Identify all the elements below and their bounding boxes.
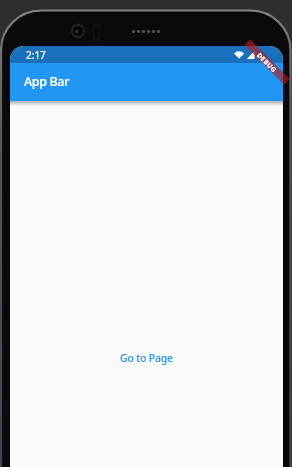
staticText: DEBUG — [256, 51, 279, 74]
button[interactable]: Go to Page — [120, 351, 173, 365]
staticText: App Bar — [24, 73, 70, 90]
staticText: Go to Page — [120, 351, 173, 365]
staticText: 2:17 — [26, 48, 46, 62]
